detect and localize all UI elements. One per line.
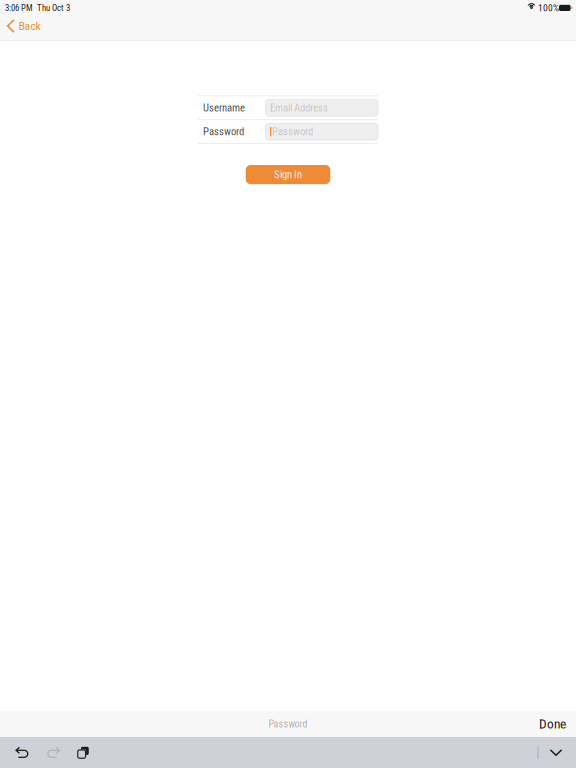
button[interactable]: Done	[529, 711, 576, 737]
button[interactable]: Back	[0, 16, 49, 40]
staticText: 100%	[538, 2, 559, 14]
staticText: Sign In	[274, 168, 302, 181]
staticText: Username	[203, 101, 245, 114]
staticText: Thu Oct 3	[37, 3, 70, 13]
staticText: Back	[19, 19, 41, 33]
staticText: Password	[268, 718, 307, 730]
button[interactable]: Hide keyboard	[544, 737, 568, 768]
button[interactable]: Undo	[7, 737, 38, 768]
button[interactable]: Paste	[68, 737, 98, 768]
staticText: Done	[539, 716, 566, 732]
button[interactable]: Sign In	[246, 165, 330, 184]
staticText: Email Address	[270, 101, 328, 114]
button[interactable]: Redo	[38, 737, 68, 768]
staticText: 3:06 PM	[5, 3, 33, 13]
staticText: Password	[272, 125, 313, 138]
staticText: Password	[203, 125, 244, 138]
